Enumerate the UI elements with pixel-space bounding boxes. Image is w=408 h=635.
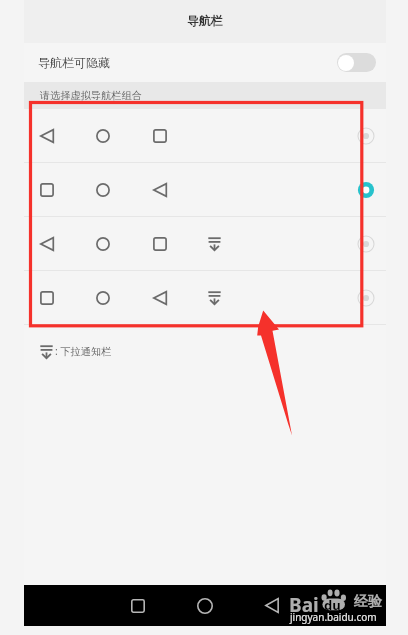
button[interactable]: Recents xyxy=(118,585,158,626)
button[interactable] xyxy=(24,109,386,163)
button[interactable]: Back xyxy=(252,585,292,626)
staticText: : 下拉通知栏 xyxy=(55,344,112,358)
button[interactable]: Home xyxy=(185,585,225,626)
staticText: 请选择虚拟导航栏组合 xyxy=(40,89,142,102)
button[interactable]: Toggle navigation bar hideable xyxy=(337,53,376,72)
button[interactable] xyxy=(24,163,386,217)
staticText: jingyan.baidu.com xyxy=(290,610,377,624)
staticText: 导航栏可隐藏 xyxy=(38,55,110,70)
button[interactable] xyxy=(24,217,386,271)
staticText: Bai xyxy=(289,592,319,618)
staticText: du xyxy=(324,596,341,614)
button[interactable] xyxy=(24,271,386,325)
button[interactable]: 导航栏可隐藏 xyxy=(24,43,386,82)
staticText: 经验 xyxy=(354,593,382,611)
staticText: 导航栏 xyxy=(187,14,223,29)
